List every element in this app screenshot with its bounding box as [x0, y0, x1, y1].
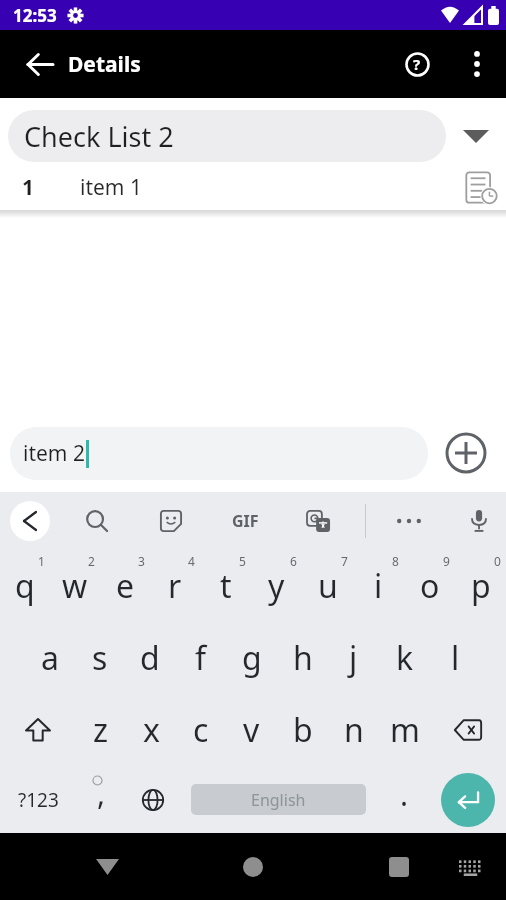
staticText: 12:53 — [13, 4, 57, 27]
staticText: . — [400, 774, 409, 815]
staticText: 8 — [392, 553, 399, 569]
button[interactable]: a — [25, 622, 75, 694]
staticText: GIF — [232, 510, 259, 532]
staticText: z — [93, 708, 109, 752]
button[interactable]: o — [404, 550, 455, 622]
staticText: g — [242, 636, 262, 680]
staticText: 7 — [341, 553, 348, 569]
staticText: 4 — [188, 553, 195, 569]
button[interactable] — [85, 850, 129, 884]
button[interactable]: w — [50, 550, 100, 622]
button[interactable] — [448, 850, 492, 884]
button[interactable]: English — [178, 766, 379, 833]
button[interactable]: k — [379, 622, 430, 694]
button[interactable]: h — [277, 622, 328, 694]
button[interactable] — [282, 492, 356, 550]
staticText: l — [451, 636, 460, 680]
button[interactable]: n — [328, 694, 379, 766]
button[interactable]: ?123 — [0, 766, 76, 833]
button[interactable] — [430, 766, 506, 833]
staticText: i — [374, 564, 383, 608]
staticText: u — [318, 564, 338, 608]
staticText: 1 — [22, 173, 35, 202]
button[interactable]: z — [76, 694, 126, 766]
button[interactable]: b — [277, 694, 328, 766]
button[interactable]: v — [226, 694, 277, 766]
staticText: 0 — [494, 553, 501, 569]
staticText: v — [243, 708, 260, 752]
button[interactable]: s — [75, 622, 125, 694]
button[interactable] — [0, 694, 76, 766]
staticText: k — [396, 636, 414, 680]
button[interactable]: c — [176, 694, 226, 766]
staticText: item 2 — [23, 439, 85, 468]
staticText: 6 — [290, 553, 297, 569]
button[interactable]: p — [455, 550, 506, 622]
staticText: t — [220, 564, 232, 608]
button[interactable]: t — [200, 550, 251, 622]
staticText: h — [293, 636, 313, 680]
staticText: a — [41, 636, 59, 680]
button[interactable]: GIF — [208, 492, 282, 550]
staticText: 2 — [88, 553, 95, 569]
button[interactable]: y — [251, 550, 302, 622]
button[interactable]: 1 — [0, 164, 506, 210]
button[interactable]: , — [76, 766, 127, 833]
button[interactable] — [60, 492, 134, 550]
staticText: , — [97, 773, 106, 814]
staticText: d — [140, 636, 160, 680]
button[interactable]: i — [353, 550, 404, 622]
staticText: r — [168, 564, 182, 608]
staticText: f — [195, 636, 207, 680]
button[interactable]: Check List 2 — [8, 110, 446, 162]
staticText: j — [349, 636, 358, 680]
staticText: s — [92, 636, 108, 680]
button[interactable]: q — [0, 550, 50, 622]
button[interactable] — [127, 766, 178, 833]
staticText: w — [62, 564, 88, 608]
button[interactable]: u — [302, 550, 353, 622]
staticText: x — [143, 708, 160, 752]
staticText: o — [420, 564, 440, 608]
button[interactable]: ? — [393, 30, 441, 98]
button[interactable]: e — [100, 550, 150, 622]
staticText: item 1 — [80, 173, 142, 202]
button[interactable] — [452, 492, 506, 550]
button[interactable] — [366, 492, 452, 550]
button[interactable]: j — [328, 622, 379, 694]
button[interactable]: item 2 — [10, 427, 428, 480]
staticText: ?123 — [18, 787, 59, 813]
staticText: q — [15, 564, 35, 608]
staticText: ? — [413, 54, 421, 74]
button[interactable]: r — [150, 550, 200, 622]
staticText: English — [251, 789, 306, 811]
staticText: b — [293, 708, 313, 752]
button[interactable]: m — [379, 694, 430, 766]
button[interactable] — [430, 694, 506, 766]
button[interactable]: . — [379, 766, 430, 833]
button[interactable] — [0, 492, 60, 550]
button[interactable] — [134, 492, 208, 550]
staticText: Check List 2 — [24, 118, 174, 155]
button[interactable] — [456, 30, 498, 98]
button[interactable] — [377, 850, 421, 884]
button[interactable]: x — [126, 694, 176, 766]
button[interactable] — [12, 30, 68, 98]
staticText: m — [390, 708, 420, 752]
button[interactable]: d — [125, 622, 175, 694]
button[interactable] — [446, 110, 506, 162]
button[interactable]: f — [175, 622, 226, 694]
staticText: e — [116, 564, 135, 608]
staticText: 1 — [38, 553, 45, 569]
staticText: p — [471, 564, 491, 608]
button[interactable]: g — [226, 622, 277, 694]
staticText: n — [344, 708, 364, 752]
staticText: 3 — [138, 553, 145, 569]
staticText: y — [268, 564, 285, 608]
staticText: c — [193, 708, 209, 752]
staticText: 9 — [443, 553, 450, 569]
button[interactable]: l — [430, 622, 481, 694]
button[interactable] — [437, 424, 495, 482]
button[interactable] — [231, 850, 275, 884]
staticText: 5 — [239, 553, 246, 569]
